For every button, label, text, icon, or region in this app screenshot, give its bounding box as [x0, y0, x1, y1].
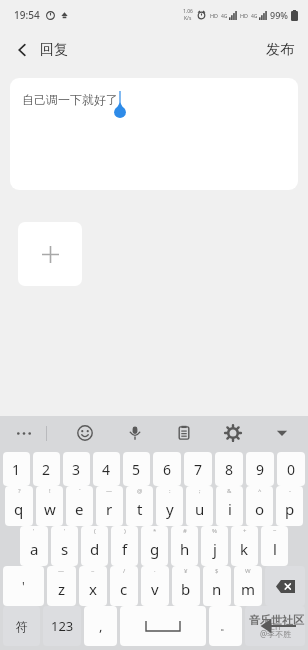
- staticText: W: [245, 567, 251, 575]
- staticText: o: [255, 499, 265, 519]
- button[interactable]: Settings: [221, 421, 245, 445]
- staticText: K/s: [184, 15, 192, 22]
- staticText: v: [151, 579, 159, 599]
- button[interactable]: 1: [3, 452, 30, 486]
- staticText: ;: [199, 487, 201, 495]
- button[interactable]: @: [126, 486, 153, 526]
- button[interactable]: Voice input: [123, 421, 147, 445]
- button[interactable]: Emoji: [73, 421, 97, 445]
- staticText: —: [106, 487, 113, 495]
- button[interactable]: 2: [33, 452, 60, 486]
- button[interactable]: 8: [215, 452, 243, 486]
- button[interactable]: -: [276, 486, 303, 526]
- button[interactable]: (: [81, 526, 108, 566]
- button[interactable]: Back: [0, 35, 78, 65]
- staticText: 3: [72, 460, 81, 479]
- button[interactable]: Space: [120, 606, 206, 646]
- button[interactable]: —: [96, 486, 123, 526]
- staticText: ': [22, 578, 25, 594]
- button[interactable]: &: [216, 486, 243, 526]
- button[interactable]: /: [110, 566, 138, 606]
- staticText: ·: [154, 567, 156, 575]
- button[interactable]: ^: [246, 486, 273, 526]
- staticText: −: [273, 527, 277, 535]
- button[interactable]: −: [261, 526, 288, 566]
- button[interactable]: ': [3, 566, 44, 606]
- button[interactable]: :: [156, 486, 183, 526]
- button[interactable]: 0: [277, 452, 305, 486]
- button[interactable]: Add image: [18, 222, 82, 286]
- button[interactable]: 5: [123, 452, 150, 486]
- staticText: /: [123, 567, 126, 575]
- button[interactable]: 4: [93, 452, 120, 486]
- button[interactable]: !: [36, 486, 63, 526]
- staticText: $: [215, 567, 219, 575]
- staticText: c: [120, 579, 128, 599]
- staticText: En: [270, 620, 281, 632]
- button[interactable]: Hide keyboard: [270, 421, 294, 445]
- staticText: @李不胜: [260, 628, 292, 639]
- staticText: b: [181, 579, 191, 599]
- staticText: 4G: [221, 13, 228, 20]
- staticText: 4: [102, 460, 111, 479]
- button[interactable]: 。: [209, 606, 242, 646]
- button[interactable]: %: [201, 526, 228, 566]
- button[interactable]: 123: [43, 606, 81, 646]
- staticText: 9: [256, 460, 265, 479]
- button[interactable]: 自己调一下就好了: [10, 78, 298, 190]
- button[interactable]: `: [66, 486, 93, 526]
- staticText: w: [44, 499, 56, 519]
- button[interactable]: *: [141, 526, 168, 566]
- button[interactable]: +: [231, 526, 258, 566]
- staticText: t: [137, 499, 143, 519]
- button[interactable]: #: [171, 526, 198, 566]
- button[interactable]: —: [47, 566, 76, 606]
- staticText: !: [49, 487, 51, 495]
- staticText: f: [122, 539, 128, 559]
- button[interactable]: ·: [141, 566, 169, 606]
- button[interactable]: ': [51, 526, 78, 566]
- staticText: x: [89, 579, 97, 599]
- button[interactable]: 发布: [252, 33, 308, 67]
- button[interactable]: ): [111, 526, 138, 566]
- staticText: 1.06: [183, 8, 193, 15]
- staticText: ~: [91, 567, 95, 575]
- button[interactable]: $: [203, 566, 231, 606]
- staticText: `: [79, 487, 81, 495]
- staticText: ?: [18, 487, 21, 495]
- staticText: 符: [16, 619, 28, 634]
- staticText: —: [58, 567, 65, 575]
- staticText: -: [289, 487, 291, 495]
- staticText: 19:54: [14, 8, 40, 22]
- staticText: %: [212, 527, 217, 535]
- staticText: g: [150, 539, 160, 559]
- staticText: z: [58, 579, 66, 599]
- staticText: n: [212, 579, 222, 599]
- button[interactable]: More: [12, 426, 36, 441]
- staticText: e: [75, 499, 84, 519]
- staticText: 0: [287, 460, 296, 479]
- button[interactable]: 6: [153, 452, 181, 486]
- staticText: a: [30, 539, 39, 559]
- button[interactable]: ¥: [172, 566, 200, 606]
- button[interactable]: 符: [3, 606, 40, 646]
- button[interactable]: ?: [5, 486, 33, 526]
- button[interactable]: 7: [184, 452, 212, 486]
- button[interactable]: ': [20, 526, 48, 566]
- button[interactable]: Enter: [245, 606, 305, 646]
- button[interactable]: ;: [186, 486, 213, 526]
- staticText: s: [61, 539, 69, 559]
- staticText: 5: [132, 460, 141, 479]
- button[interactable]: ,: [84, 606, 117, 646]
- staticText: (: [94, 527, 96, 535]
- button[interactable]: 9: [246, 452, 274, 486]
- staticText: *: [153, 527, 157, 535]
- staticText: @: [137, 487, 143, 495]
- button[interactable]: W: [234, 566, 262, 606]
- staticText: ': [33, 527, 35, 535]
- button[interactable]: ~: [79, 566, 107, 606]
- button[interactable]: Backspace: [265, 566, 305, 606]
- staticText: r: [106, 499, 113, 519]
- button[interactable]: Clipboard: [172, 421, 196, 445]
- button[interactable]: 3: [63, 452, 90, 486]
